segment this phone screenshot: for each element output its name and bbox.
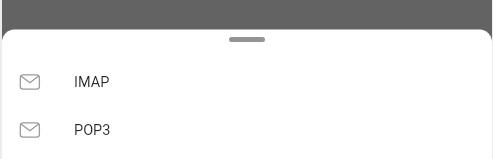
staticText: POP3	[74, 122, 111, 139]
button[interactable]: POP3	[0, 106, 493, 154]
staticText: IMAP	[74, 74, 110, 91]
button[interactable]: IMAP	[0, 58, 493, 106]
button[interactable]: Drag handle	[0, 37, 493, 42]
